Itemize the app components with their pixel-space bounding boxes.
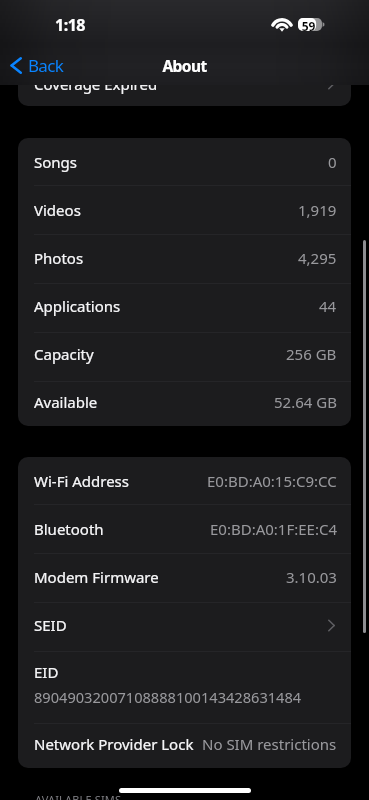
button[interactable]: Applications <box>18 282 351 330</box>
staticText: AVAILABLE SIMS <box>35 792 122 800</box>
button[interactable]: Modem Firmware <box>18 553 351 601</box>
staticText: SEID <box>34 615 67 635</box>
staticText: Network Provider Lock <box>34 734 194 754</box>
button[interactable]: Network Provider Lock <box>18 720 351 768</box>
staticText: Wi-Fi Address <box>34 471 129 491</box>
staticText: 1,919 <box>298 200 337 220</box>
staticText: 0 <box>328 152 337 172</box>
staticText: Capacity <box>34 344 94 364</box>
button[interactable]: Back <box>10 51 64 79</box>
staticText: Available <box>34 392 98 412</box>
staticText: 59 <box>298 18 319 34</box>
staticText: E0:BD:A0:15:C9:CC <box>207 471 337 491</box>
staticText: Coverage Expired <box>34 74 158 94</box>
staticText: 89049032007108888100143428631484 <box>34 687 302 707</box>
staticText: Modem Firmware <box>34 567 159 587</box>
staticText: Bluetooth <box>34 519 104 539</box>
button[interactable]: Videos <box>18 186 351 234</box>
button[interactable]: Coverage Expired <box>18 61 351 106</box>
button[interactable]: Songs <box>18 138 351 186</box>
staticText: No SIM restrictions <box>202 734 337 754</box>
staticText: 1:18 <box>55 14 85 36</box>
staticText: Applications <box>34 296 121 316</box>
other: Battery 59 percent <box>298 18 324 31</box>
staticText: Photos <box>34 248 84 268</box>
staticText: Videos <box>34 200 81 220</box>
button[interactable]: Wi-Fi Address <box>18 457 351 505</box>
button[interactable]: Photos <box>18 234 351 282</box>
staticText: 52.64 GB <box>274 392 337 412</box>
staticText: About <box>0 55 369 76</box>
button[interactable]: SEID <box>18 601 351 649</box>
staticText: EID <box>34 662 59 682</box>
button[interactable]: Capacity <box>18 330 351 378</box>
button[interactable]: EID <box>18 649 351 720</box>
staticText: 44 <box>319 296 337 316</box>
staticText: Back <box>28 54 64 77</box>
staticText: Songs <box>34 152 77 172</box>
staticText: 256 GB <box>286 344 337 364</box>
staticText: 3.10.03 <box>286 567 337 587</box>
other: Wi-Fi <box>273 18 291 31</box>
staticText: 4,295 <box>298 248 337 268</box>
staticText: E0:BD:A0:1F:EE:C4 <box>210 519 337 539</box>
button[interactable]: Bluetooth <box>18 505 351 553</box>
button[interactable]: Available <box>18 378 351 426</box>
